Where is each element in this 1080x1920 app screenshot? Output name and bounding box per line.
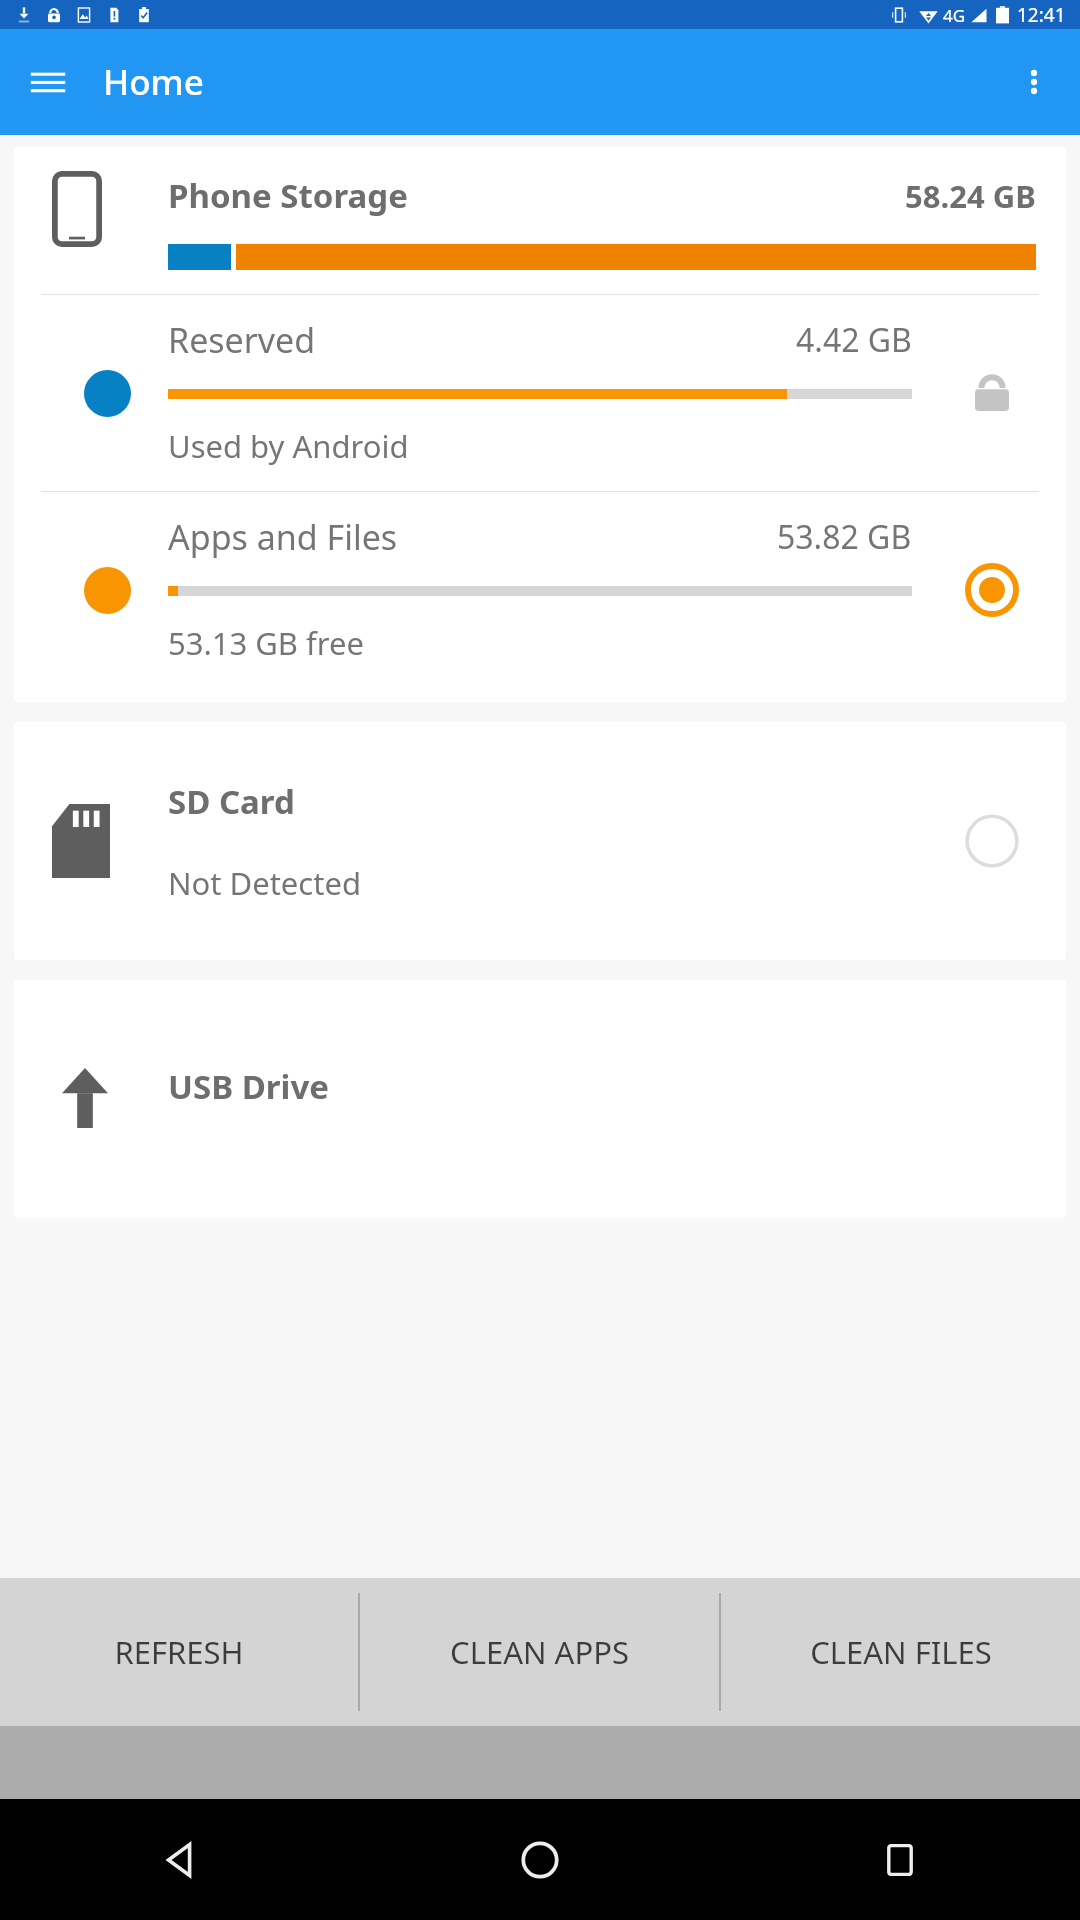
staticText: 4.42 GB	[796, 318, 912, 362]
button[interactable]: Apps and Files	[14, 492, 1066, 688]
staticText: 12:41	[1017, 2, 1066, 28]
staticText: 58.24 GB	[905, 175, 1036, 217]
button[interactable]: SD Card	[14, 722, 1066, 960]
button[interactable]: REFRESH	[0, 1578, 358, 1726]
staticText: Reserved	[168, 317, 316, 363]
staticText: Phone Storage	[168, 173, 408, 218]
staticText: USB Drive	[168, 1064, 329, 1109]
staticText: Apps and Files	[168, 514, 398, 560]
staticText: Used by Android	[168, 425, 409, 467]
button[interactable]: USB Drive	[14, 980, 1066, 1218]
staticText: SD Card	[168, 779, 295, 824]
button[interactable]: Select SD Card	[956, 805, 1028, 877]
button[interactable]: Reserved	[14, 295, 1066, 491]
button[interactable]: More options	[1008, 56, 1060, 108]
button[interactable]: Home	[360, 1799, 720, 1920]
staticText: Home	[103, 58, 204, 106]
staticText: CLEAN FILES	[810, 1631, 992, 1673]
staticText: Not Detected	[168, 862, 361, 904]
staticText: REFRESH	[114, 1631, 244, 1673]
staticText: 53.82 GB	[777, 515, 912, 559]
staticText: 4G	[943, 4, 966, 27]
button[interactable]: CLEAN APPS	[360, 1578, 719, 1726]
button[interactable]: Recent apps	[720, 1799, 1080, 1920]
button[interactable]: Locked	[960, 361, 1024, 425]
button[interactable]: Back	[0, 1799, 360, 1920]
button[interactable]: Open navigation menu	[22, 56, 74, 108]
button[interactable]: CLEAN FILES	[721, 1578, 1080, 1726]
button[interactable]: Phone Storage	[14, 147, 1066, 702]
staticText: 53.13 GB free	[168, 622, 364, 664]
staticText: CLEAN APPS	[450, 1631, 629, 1673]
button[interactable]: Apps and Files selected	[956, 554, 1028, 626]
